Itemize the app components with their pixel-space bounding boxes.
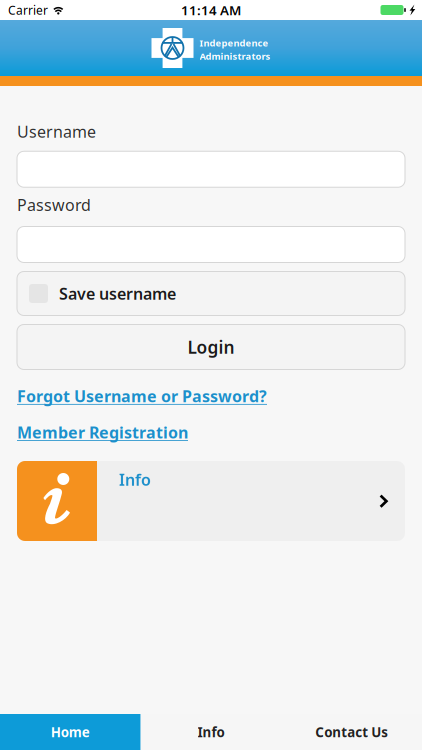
button[interactable]: Login bbox=[17, 324, 405, 369]
staticText: Carrier bbox=[8, 2, 48, 18]
staticText: Login bbox=[187, 335, 234, 358]
staticText: Contact Us bbox=[315, 723, 388, 741]
staticText: Save username bbox=[59, 283, 176, 304]
staticText: Info bbox=[119, 469, 151, 490]
button[interactable]: Save username bbox=[17, 271, 405, 315]
button[interactable]: Info bbox=[17, 461, 405, 541]
staticText: Administrators bbox=[199, 50, 270, 62]
staticText: Independence bbox=[199, 37, 268, 49]
button[interactable]: Contact Us bbox=[281, 714, 422, 750]
staticText: Member Registration bbox=[17, 422, 188, 443]
staticText: Forgot Username or Password? bbox=[17, 385, 267, 407]
staticText: 11:14 AM bbox=[181, 1, 241, 19]
button[interactable]: Info bbox=[141, 714, 281, 750]
button[interactable]: Forgot Username or Password? bbox=[17, 385, 267, 407]
staticText: Password bbox=[17, 194, 91, 215]
button[interactable]: Member Registration bbox=[17, 422, 188, 443]
staticText: Info bbox=[197, 723, 224, 741]
staticText: Username bbox=[17, 121, 96, 142]
staticText: Home bbox=[51, 723, 90, 741]
button[interactable]: Home bbox=[0, 714, 141, 750]
